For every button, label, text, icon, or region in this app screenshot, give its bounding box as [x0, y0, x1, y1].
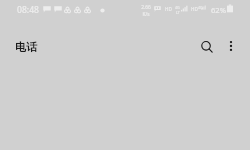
staticText: 62%: [211, 5, 226, 15]
staticText: HD: [191, 6, 198, 12]
staticText: 4G: [198, 5, 203, 10]
button[interactable]: More options: [217, 32, 245, 60]
staticText: 电话: [15, 40, 37, 54]
staticText: 2.66: [141, 4, 151, 11]
staticText: LT: [176, 10, 180, 15]
staticText: K/s: [142, 11, 150, 18]
staticText: 4G: [175, 5, 180, 10]
staticText: 08:48: [17, 4, 39, 16]
button[interactable]: Search: [193, 33, 221, 61]
staticText: HD: [165, 6, 172, 12]
